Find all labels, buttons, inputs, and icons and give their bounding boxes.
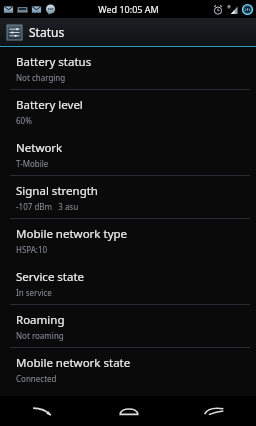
button[interactable]: Network [0,133,256,176]
staticText: Connected [16,373,57,384]
staticText: Roaming [16,312,65,328]
staticText: Service state [16,269,85,285]
button[interactable]: Status [0,18,256,46]
button[interactable]: Battery status [0,47,256,90]
staticText: Battery level [16,97,83,113]
staticText: In service [16,287,52,298]
button[interactable]: Signal strength [0,176,256,219]
staticText: Not charging [16,72,66,83]
staticText: -107 dBm 3 asu [16,201,79,212]
staticText: Signal strength [16,183,98,199]
button[interactable]: Recent apps [171,396,256,426]
button[interactable]: Back [0,396,86,426]
button[interactable]: Roaming [0,305,256,348]
staticText: T-Mobile [16,158,49,169]
staticText: HSPA:10 [16,244,48,255]
staticText: Battery status [16,54,92,70]
staticText: Mobile network type [16,226,128,242]
button[interactable]: Home [86,396,171,426]
button[interactable]: Mobile network state [0,348,256,391]
button[interactable]: Service state [0,262,256,305]
staticText: Wed 10:05 AM [98,3,159,15]
staticText: Network [16,140,63,156]
staticText: Not roaming [16,330,64,341]
button[interactable]: Battery level [0,90,256,133]
staticText: Mobile network state [16,355,131,371]
staticText: Status [29,24,65,40]
staticText: 60% [16,115,32,126]
button[interactable]: Mobile network type [0,219,256,262]
